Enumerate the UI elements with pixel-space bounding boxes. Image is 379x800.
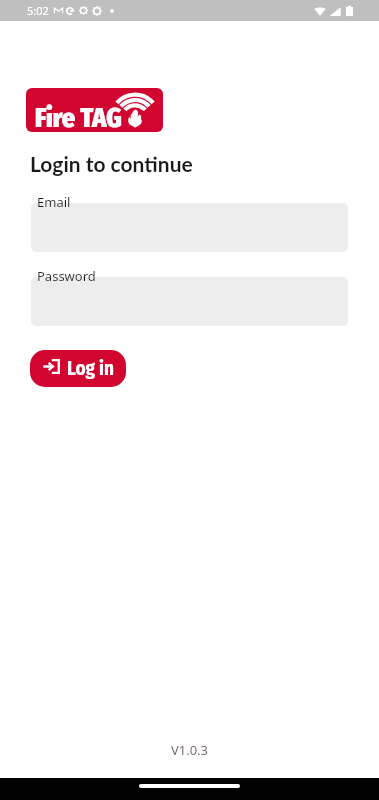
staticText: Log in	[67, 357, 114, 380]
staticText: Password	[37, 267, 96, 285]
other: Signal	[329, 5, 341, 17]
button[interactable]	[31, 203, 348, 252]
other: Battery	[346, 5, 353, 17]
other: Log in	[43, 359, 60, 374]
staticText: Login to continue	[30, 151, 193, 176]
staticText: Fire TAG	[35, 103, 122, 132]
other: Wi-Fi	[314, 5, 326, 17]
staticText: Email	[37, 193, 71, 211]
other: FireTAG	[113, 90, 157, 130]
staticText: 5:02	[27, 3, 49, 18]
staticText: V1.0.3	[0, 741, 379, 759]
button[interactable]	[31, 277, 348, 326]
button[interactable]: Log in	[30, 350, 126, 387]
